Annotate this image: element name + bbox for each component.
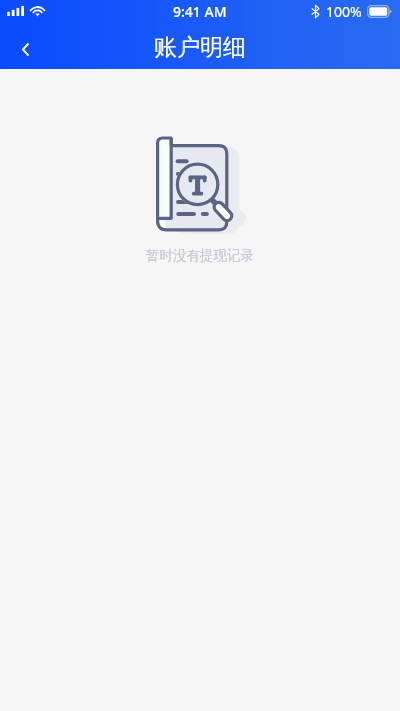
staticText: 100%	[326, 2, 362, 21]
button[interactable]: Back	[3, 27, 47, 71]
staticText: 账户明细	[154, 33, 246, 62]
staticText: 9:41 AM	[173, 2, 227, 21]
staticText: 暂时没有提现记录	[146, 247, 254, 264]
